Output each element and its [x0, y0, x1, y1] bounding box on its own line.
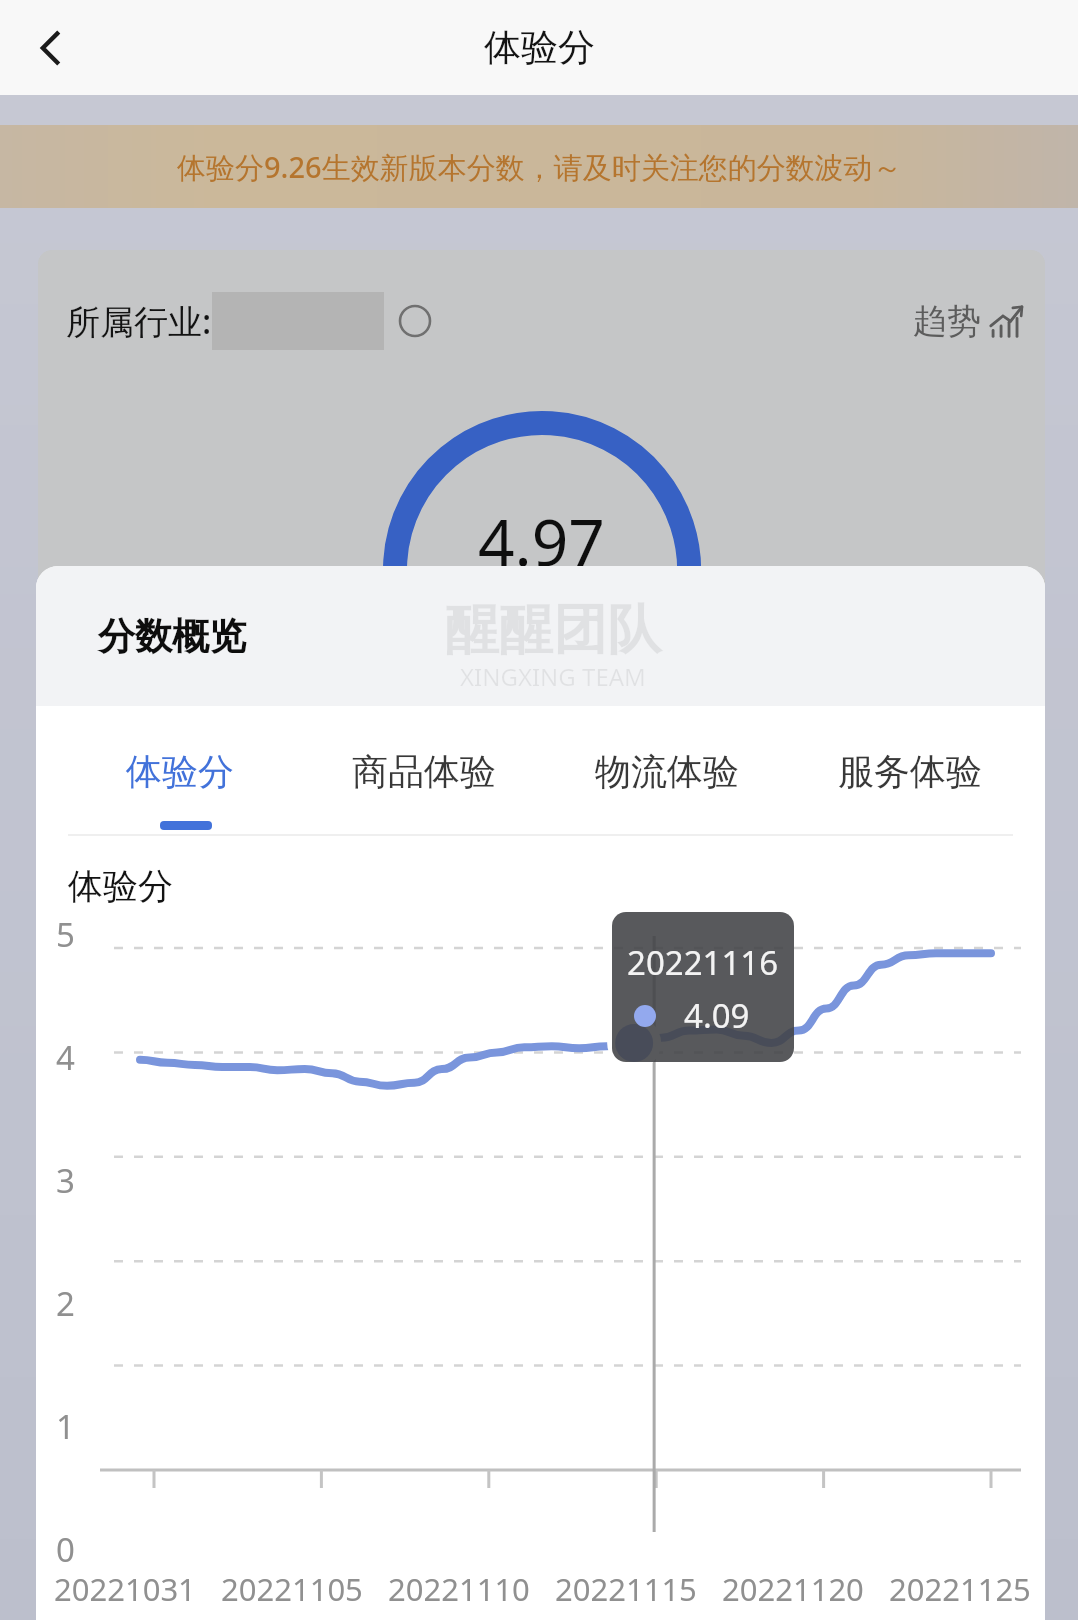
staticText: 商品体验 — [352, 749, 496, 794]
button[interactable]: 趋势 — [913, 300, 1025, 343]
staticText: XINGXING TEAM — [460, 660, 646, 693]
staticText: 4 — [56, 1035, 75, 1080]
staticText: 体验分 — [68, 864, 173, 908]
button[interactable]: 体验分9.26生效新版本分数，请及时关注您的分数波动～ — [0, 125, 1078, 208]
staticText: 物流体验 — [595, 749, 739, 794]
staticText: 20221031 — [54, 1568, 196, 1610]
staticText: 服务体验 — [838, 749, 982, 794]
staticText: 4.97 — [478, 498, 605, 585]
button[interactable]: 服务体验 — [788, 706, 1031, 836]
staticText: 20221116 — [627, 940, 779, 985]
button[interactable]: 体验分 — [58, 706, 302, 836]
staticText: 分数概览 — [98, 613, 246, 660]
staticText: 20221120 — [722, 1568, 864, 1610]
button[interactable]: Help — [398, 304, 432, 338]
button[interactable]: 商品体验 — [302, 706, 545, 836]
staticText: 1 — [56, 1404, 75, 1449]
staticText: 20221105 — [221, 1568, 363, 1610]
button[interactable]: 物流体验 — [545, 706, 788, 836]
staticText: 3 — [56, 1158, 75, 1203]
staticText: 5 — [56, 912, 75, 957]
button[interactable]: Back — [12, 10, 88, 86]
staticText: 2 — [56, 1281, 75, 1326]
staticText: 4.09 — [684, 993, 750, 1038]
staticText: 醒醒团队 — [445, 596, 661, 664]
staticText: 所属行业: — [66, 298, 212, 344]
staticText: 体验分9.26生效新版本分数，请及时关注您的分数波动～ — [177, 147, 902, 187]
staticText: 20221110 — [388, 1568, 530, 1610]
staticText: 20221115 — [555, 1568, 697, 1610]
staticText: 体验分 — [484, 24, 595, 71]
staticText: 0 — [56, 1527, 75, 1572]
staticText: 趋势 — [913, 300, 981, 343]
staticText: 体验分 — [126, 749, 234, 794]
staticText: 20221125 — [889, 1568, 1031, 1610]
